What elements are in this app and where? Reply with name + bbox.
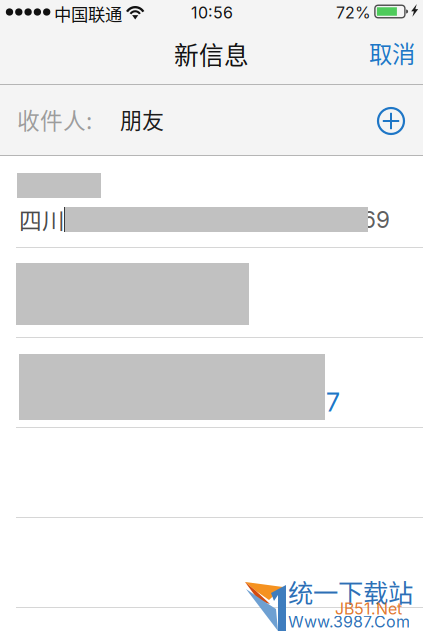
button[interactable]: 四川 contact xyxy=(0,156,423,247)
staticText: 72% xyxy=(336,3,371,22)
staticText: 10:56 xyxy=(191,3,233,22)
button[interactable]: 取消 xyxy=(360,26,423,80)
button[interactable]: Contact xyxy=(0,247,423,337)
staticText: Www.3987.Com xyxy=(288,612,410,631)
staticText: 取消 xyxy=(369,36,415,70)
staticText: 新信息 xyxy=(174,36,249,72)
button[interactable]: Contact xyxy=(0,517,423,607)
button[interactable]: Contact xyxy=(0,427,423,517)
button[interactable]: Contact xyxy=(0,337,423,427)
staticText: 7 xyxy=(326,387,340,418)
staticText: 四川 xyxy=(19,203,65,236)
button[interactable]: Add contact xyxy=(375,105,407,137)
staticText: 69 xyxy=(362,206,390,233)
staticText: 中国联通 xyxy=(54,1,122,26)
staticText: 朋友 xyxy=(120,103,164,135)
staticText: 收件人: xyxy=(17,103,92,136)
staticText: 统一下载站 xyxy=(288,573,413,610)
staticText: JB51.Net xyxy=(335,599,402,618)
